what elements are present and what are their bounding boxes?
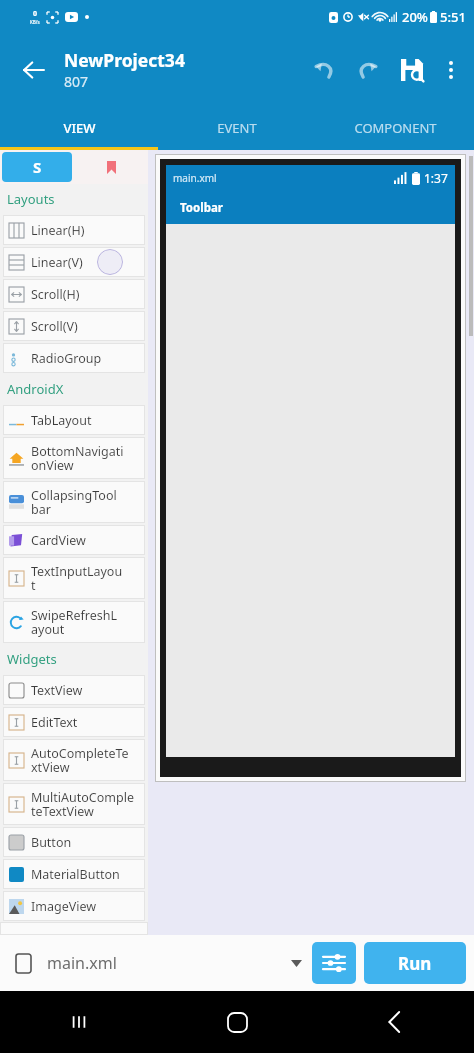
staticText: TabLayout — [31, 412, 92, 429]
button[interactable]: main.xml — [8, 935, 312, 991]
staticText: ImageView — [31, 898, 97, 915]
staticText: Toolbar — [180, 200, 223, 216]
staticText: AndroidX — [7, 380, 64, 398]
staticText: 5:51 — [440, 8, 466, 26]
staticText: Linear(H) — [31, 222, 85, 239]
button[interactable]: TabLayout — [3, 405, 145, 435]
staticText: COMPONENT — [354, 119, 437, 137]
staticText: S — [33, 157, 42, 177]
staticText: Scroll(V) — [31, 318, 78, 335]
button[interactable]: Linear(V) — [3, 247, 145, 277]
button[interactable]: MultiAutoComple teTextView — [3, 783, 145, 825]
staticText: Widgets — [7, 650, 57, 668]
staticText: SwipeRefreshL ayout — [31, 607, 118, 638]
staticText: Layouts — [7, 190, 55, 208]
staticText: EditText — [31, 714, 78, 731]
staticText: TextInputLayou t — [31, 563, 123, 594]
button[interactable]: Button — [3, 827, 145, 857]
staticText: MultiAutoComple teTextView — [31, 789, 134, 820]
staticText: main.xml — [173, 171, 217, 185]
button[interactable]: Home — [207, 992, 267, 1052]
staticText: 807 — [64, 72, 89, 91]
button[interactable]: Redo — [346, 48, 390, 92]
staticText: CollapsingTool bar — [31, 487, 117, 518]
staticText: BottomNavigati onView — [31, 443, 124, 474]
staticText: 1:37 — [424, 170, 448, 186]
staticText: VIEW — [63, 119, 96, 137]
button[interactable]: More options — [434, 48, 468, 92]
button[interactable]: Back — [365, 992, 425, 1052]
button[interactable]: BottomNavigati onView — [3, 437, 145, 479]
button[interactable]: VIEW — [0, 105, 158, 150]
staticText: KB/s — [30, 19, 40, 25]
button[interactable]: AutoCompleteTe xtView — [3, 739, 145, 781]
staticText: Run — [398, 952, 432, 975]
staticText: 20% — [402, 8, 428, 26]
button[interactable]: Undo — [302, 48, 346, 92]
staticText: MaterialButton — [31, 866, 120, 883]
staticText: NewProject34 — [64, 48, 185, 72]
button[interactable]: Scroll(V) — [3, 311, 145, 341]
button[interactable]: Recent apps — [49, 992, 109, 1052]
staticText: 0 — [33, 9, 38, 19]
button[interactable]: ImageView — [3, 891, 145, 921]
staticText: Linear(V) — [31, 254, 83, 271]
button[interactable]: Save — [390, 48, 434, 92]
staticText: Scroll(H) — [31, 286, 80, 303]
staticText: main.xml — [47, 952, 117, 974]
button[interactable]: Run — [364, 942, 466, 984]
button[interactable]: CardView — [3, 525, 145, 555]
staticText: Button — [31, 834, 72, 851]
staticText: TextView — [31, 682, 83, 699]
button[interactable]: Back — [12, 48, 56, 92]
button[interactable]: EVENT — [158, 105, 316, 150]
button[interactable]: Linear(H) — [3, 215, 145, 245]
button[interactable]: Scroll(H) — [3, 279, 145, 309]
button[interactable]: COMPONENT — [316, 105, 474, 150]
button[interactable]: Settings — [312, 942, 356, 984]
staticText: AutoCompleteTe xtView — [31, 745, 129, 776]
button[interactable]: TextView — [3, 675, 145, 705]
staticText: RadioGroup — [31, 350, 102, 367]
button[interactable]: MaterialButton — [3, 859, 145, 889]
button[interactable]: CollapsingTool bar — [3, 481, 145, 523]
staticText: EVENT — [217, 119, 257, 137]
button[interactable]: EditText — [3, 707, 145, 737]
button[interactable]: Widgets palette — [2, 152, 72, 182]
staticText: CardView — [31, 532, 86, 549]
button[interactable]: Saved components — [74, 150, 148, 184]
button[interactable]: RadioGroup — [3, 343, 145, 373]
button[interactable]: SwipeRefreshL ayout — [3, 601, 145, 643]
button[interactable]: TextInputLayou t — [3, 557, 145, 599]
